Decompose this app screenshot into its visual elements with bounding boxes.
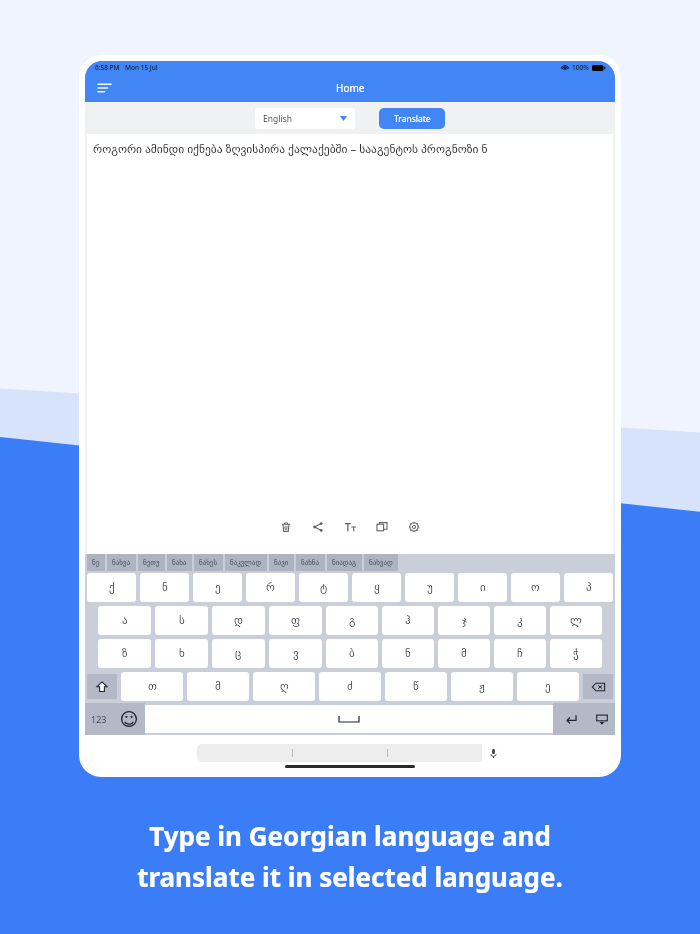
button[interactable]: English bbox=[255, 108, 355, 129]
button[interactable]: Translate bbox=[379, 108, 445, 129]
button[interactable]: ქ bbox=[87, 573, 136, 602]
staticText: Type in Georgian language and bbox=[0, 818, 700, 853]
button[interactable]: ჟ bbox=[451, 672, 513, 701]
button[interactable]: ც bbox=[212, 639, 265, 668]
button[interactable]: ჯ bbox=[438, 606, 490, 635]
button[interactable]: ჭ bbox=[550, 639, 602, 668]
staticText: წ bbox=[413, 680, 419, 693]
button[interactable]: Emoji bbox=[113, 703, 145, 735]
staticText: ჯ bbox=[462, 614, 467, 627]
staticText: დ bbox=[234, 614, 243, 627]
button[interactable]: ნახნა bbox=[296, 554, 325, 571]
button[interactable]: ნახეს bbox=[194, 554, 223, 571]
button[interactable]: ვ bbox=[269, 639, 322, 668]
staticText: ღ bbox=[280, 680, 289, 693]
button[interactable]: ნიადაგ bbox=[327, 554, 362, 571]
button[interactable]: ძ bbox=[319, 672, 381, 701]
staticText: თ bbox=[148, 680, 157, 693]
button[interactable]: რ bbox=[246, 573, 295, 602]
button[interactable]: ტ bbox=[299, 573, 348, 602]
staticText: ნიადაგ bbox=[332, 559, 357, 567]
button[interactable]: ა bbox=[98, 606, 151, 635]
button[interactable]: ნ bbox=[140, 573, 189, 602]
staticText: ტ bbox=[320, 581, 328, 594]
staticText: ა bbox=[122, 614, 128, 627]
button[interactable]: ნ bbox=[382, 639, 434, 668]
button[interactable]: ხ bbox=[155, 639, 208, 668]
button[interactable]: მ bbox=[438, 639, 490, 668]
staticText: უ bbox=[427, 581, 433, 594]
staticText: ჩ bbox=[517, 647, 523, 660]
button[interactable]: Shift bbox=[87, 674, 117, 699]
staticText: ე bbox=[545, 680, 551, 693]
button[interactable]: Settings bbox=[405, 518, 423, 536]
button[interactable]: გ bbox=[326, 606, 378, 635]
staticText: ნეთუ bbox=[143, 559, 160, 567]
button[interactable]: Copy bbox=[373, 518, 391, 536]
button[interactable]: Enter bbox=[553, 703, 589, 735]
staticText: ნახეს bbox=[199, 559, 218, 567]
button[interactable]: ნეთუ bbox=[138, 554, 165, 571]
staticText: პ bbox=[586, 581, 592, 594]
button[interactable]: ნახა bbox=[167, 554, 192, 571]
staticText: ბ bbox=[349, 647, 355, 660]
staticText: Translate bbox=[394, 113, 431, 125]
staticText: ი bbox=[480, 581, 486, 594]
button[interactable]: ი bbox=[458, 573, 507, 602]
staticText: ქ bbox=[109, 581, 115, 594]
button[interactable]: Menu bbox=[94, 78, 114, 98]
button[interactable]: ჰ bbox=[382, 606, 434, 635]
staticText: მ bbox=[461, 647, 467, 660]
button[interactable]: ე bbox=[193, 573, 242, 602]
staticText: ჭ bbox=[573, 647, 579, 660]
button[interactable]: ე bbox=[517, 672, 579, 701]
staticText: ხ bbox=[179, 647, 185, 660]
button[interactable]: დ bbox=[212, 606, 265, 635]
staticText: ნახნა bbox=[301, 559, 320, 567]
button[interactable]: ყ bbox=[352, 573, 401, 602]
button[interactable]: თ bbox=[121, 672, 183, 701]
button[interactable]: ჩ bbox=[494, 639, 546, 668]
button[interactable]: მ bbox=[187, 672, 249, 701]
staticText: ჰ bbox=[405, 614, 411, 627]
button[interactable]: ნე bbox=[87, 554, 105, 571]
staticText: English bbox=[263, 113, 292, 125]
staticText: გ bbox=[349, 614, 356, 627]
staticText: Mon 15 Jul bbox=[125, 63, 158, 72]
staticText: ნ bbox=[405, 647, 411, 660]
button[interactable]: ნავი bbox=[269, 554, 294, 571]
staticText: ზ bbox=[122, 647, 128, 660]
button[interactable]: ნაკვლად bbox=[225, 554, 267, 571]
button[interactable]: ლ bbox=[550, 606, 602, 635]
button[interactable]: ნახვად bbox=[364, 554, 398, 571]
button[interactable]: ს bbox=[155, 606, 208, 635]
staticText: 100% bbox=[572, 63, 589, 72]
button[interactable]: უ bbox=[405, 573, 454, 602]
button[interactable]: 123 bbox=[85, 703, 113, 735]
button[interactable]: პ bbox=[564, 573, 613, 602]
button[interactable]: ზ bbox=[98, 639, 151, 668]
staticText: ყ bbox=[374, 581, 380, 594]
staticText: რ bbox=[266, 581, 275, 594]
button[interactable]: Space bbox=[145, 705, 553, 733]
button[interactable]: Text size bbox=[341, 518, 359, 536]
button[interactable]: Hide keyboard bbox=[589, 703, 615, 735]
staticText: ნახვად bbox=[369, 559, 393, 567]
staticText: კ bbox=[517, 614, 523, 627]
button[interactable]: Voice input bbox=[482, 744, 504, 762]
staticText: ფ bbox=[291, 614, 301, 627]
button[interactable]: ო bbox=[511, 573, 560, 602]
button[interactable]: კ bbox=[494, 606, 546, 635]
staticText: როგორი ამინდი იქნება ზღვისპირა ქალაქებში… bbox=[93, 141, 488, 157]
button[interactable]: ნახვა bbox=[107, 554, 136, 571]
button[interactable]: ფ bbox=[269, 606, 322, 635]
button[interactable]: ღ bbox=[253, 672, 315, 701]
staticText: ჟ bbox=[479, 680, 485, 693]
button[interactable]: Delete bbox=[277, 518, 295, 536]
staticText: ნე bbox=[92, 559, 100, 567]
staticText: ე bbox=[215, 581, 221, 594]
button[interactable]: Backspace bbox=[583, 674, 613, 699]
button[interactable]: წ bbox=[385, 672, 447, 701]
button[interactable]: Share bbox=[309, 518, 327, 536]
button[interactable]: ბ bbox=[326, 639, 378, 668]
